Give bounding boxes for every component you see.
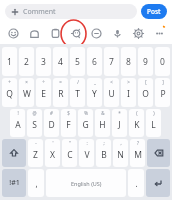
staticText: _	[94, 79, 96, 85]
staticText: ,	[120, 140, 122, 146]
staticText: 1	[7, 56, 12, 68]
button[interactable]: English (US)	[46, 169, 126, 197]
staticText: %	[84, 110, 88, 116]
staticText: C	[67, 149, 73, 161]
button[interactable]: Stickers	[25, 24, 43, 42]
button[interactable]: =	[53, 78, 68, 107]
staticText: )	[153, 110, 155, 116]
staticText: Z	[33, 149, 38, 161]
button[interactable]: +	[2, 78, 17, 107]
button[interactable]: Post	[141, 4, 167, 19]
button[interactable]: Emoji	[4, 24, 22, 42]
button[interactable]: ;	[96, 139, 111, 167]
staticText: :	[86, 140, 88, 146]
staticText: -	[35, 140, 37, 146]
staticText: P	[160, 88, 166, 100]
staticText: L	[151, 119, 156, 131]
button[interactable]: Enter	[146, 169, 170, 197]
staticText: N	[117, 149, 124, 161]
staticText: 7	[109, 56, 114, 68]
button[interactable]: &	[95, 109, 110, 137]
button[interactable]: Text edit	[87, 24, 105, 42]
button[interactable]: /	[70, 78, 85, 107]
staticText: M	[134, 149, 142, 161]
staticText: U	[108, 88, 115, 100]
staticText: $	[67, 110, 70, 116]
staticText: ,	[35, 178, 38, 189]
staticText: ]	[162, 79, 164, 85]
staticText: English (US)	[71, 180, 102, 187]
button[interactable]: Voice input	[108, 24, 126, 42]
staticText: I	[127, 88, 130, 100]
button[interactable]: Comment	[5, 4, 137, 19]
staticText: O	[142, 88, 149, 100]
staticText: 3	[41, 56, 46, 68]
button[interactable]: ,	[28, 169, 44, 197]
button[interactable]: 2	[19, 47, 34, 76]
staticText: S	[32, 119, 37, 131]
staticText: .	[135, 178, 138, 189]
button[interactable]: $	[61, 109, 76, 137]
button[interactable]: 4	[53, 47, 68, 76]
staticText: A	[15, 119, 21, 131]
button[interactable]: #	[44, 109, 59, 137]
button[interactable]: [	[138, 78, 153, 107]
button[interactable]: :	[79, 139, 94, 167]
button[interactable]: _	[87, 78, 102, 107]
button[interactable]: 1	[2, 47, 17, 76]
button[interactable]: .	[128, 169, 144, 197]
staticText: H	[99, 119, 106, 131]
button[interactable]: %	[78, 109, 93, 137]
staticText: &	[101, 110, 105, 116]
staticText: V	[84, 149, 90, 161]
staticText: !	[17, 110, 19, 116]
staticText: 8	[126, 56, 131, 68]
staticText: 4	[58, 56, 63, 68]
button[interactable]: Settings	[129, 24, 147, 42]
button[interactable]: Shift	[2, 139, 26, 167]
button[interactable]: 9	[138, 47, 153, 76]
staticText: Y	[92, 88, 97, 100]
button[interactable]: !	[10, 109, 25, 137]
button[interactable]: ,	[113, 139, 128, 167]
staticText: T	[75, 88, 80, 100]
staticText: F	[66, 119, 71, 131]
button[interactable]: 3	[36, 47, 51, 76]
button[interactable]: More options	[150, 24, 168, 42]
button[interactable]: ?	[130, 139, 145, 167]
staticText: [	[145, 79, 147, 85]
button[interactable]: !#1	[2, 169, 26, 197]
button[interactable]: 6	[87, 47, 102, 76]
button[interactable]: ×	[19, 78, 34, 107]
button[interactable]: (	[129, 109, 144, 137]
button[interactable]: 8	[121, 47, 136, 76]
button[interactable]: *	[112, 109, 127, 137]
staticText: R	[58, 88, 64, 100]
staticText: X	[50, 149, 55, 161]
button[interactable]: ÷	[36, 78, 51, 107]
button[interactable]: -	[28, 139, 43, 167]
button[interactable]: >	[121, 78, 136, 107]
button[interactable]: )	[146, 109, 161, 137]
button[interactable]: Clipboard	[46, 24, 64, 42]
staticText: E	[41, 88, 46, 100]
staticText: /	[77, 79, 79, 85]
staticText: *	[118, 110, 121, 116]
button[interactable]: Backspace	[147, 139, 170, 167]
staticText: "	[69, 140, 71, 146]
button[interactable]: 7	[104, 47, 119, 76]
button[interactable]: @	[27, 109, 42, 137]
staticText: !#1	[9, 178, 20, 188]
staticText: >	[127, 79, 130, 85]
button[interactable]: 0	[155, 47, 170, 76]
staticText: ×	[25, 79, 28, 85]
button[interactable]: 5	[70, 47, 85, 76]
button[interactable]: '	[45, 139, 60, 167]
button[interactable]: "	[62, 139, 77, 167]
staticText: #	[50, 110, 53, 116]
staticText: <	[110, 79, 113, 85]
button[interactable]: Effects	[67, 24, 85, 42]
button[interactable]: <	[104, 78, 119, 107]
staticText: G	[82, 119, 89, 131]
button[interactable]: ]	[155, 78, 170, 107]
